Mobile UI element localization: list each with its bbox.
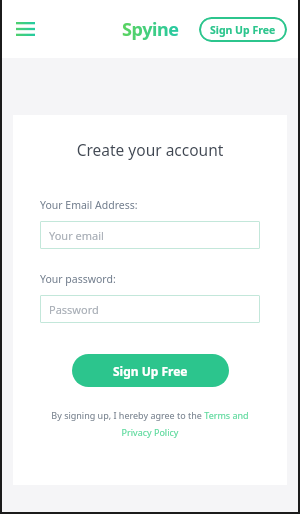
staticText: Your password: — [40, 272, 116, 286]
button[interactable]: Your email — [40, 221, 260, 249]
button[interactable]: By signing up, I hereby agree to the Ter… — [37, 409, 263, 439]
staticText: Spyine — [122, 17, 179, 42]
staticText: Your email — [49, 228, 104, 243]
button[interactable]: Menu — [9, 13, 41, 45]
staticText: By signing up, I hereby agree to the Ter… — [37, 409, 263, 439]
staticText: Sign Up Free — [113, 363, 188, 379]
staticText: Sign Up Free — [210, 23, 276, 37]
staticText: Your Email Address: — [40, 198, 138, 212]
button[interactable]: Sign Up Free — [199, 17, 287, 42]
button[interactable]: Sign Up Free — [72, 354, 229, 387]
staticText: Create your account — [13, 139, 287, 160]
button[interactable]: Password — [40, 295, 260, 323]
staticText: Password — [49, 302, 99, 317]
